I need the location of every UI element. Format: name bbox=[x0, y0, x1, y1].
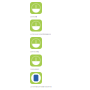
button[interactable]: Save Child bbox=[30, 2, 42, 18]
staticText: Whatever one Find Release bbox=[30, 33, 51, 35]
button[interactable]: Something bbox=[30, 37, 42, 53]
staticText: Save Child bbox=[30, 15, 37, 18]
staticText: Something bbox=[30, 50, 39, 53]
staticText: 1000 Vegan bbox=[30, 68, 39, 70]
button[interactable]: 1000 Vegan bbox=[30, 54, 42, 70]
button[interactable]: Lorem ipsum dolor sit amet bbox=[30, 72, 52, 88]
button[interactable]: Whatever one Find Release bbox=[30, 19, 51, 35]
staticText: Lorem ipsum dolor sit amet bbox=[30, 85, 52, 88]
